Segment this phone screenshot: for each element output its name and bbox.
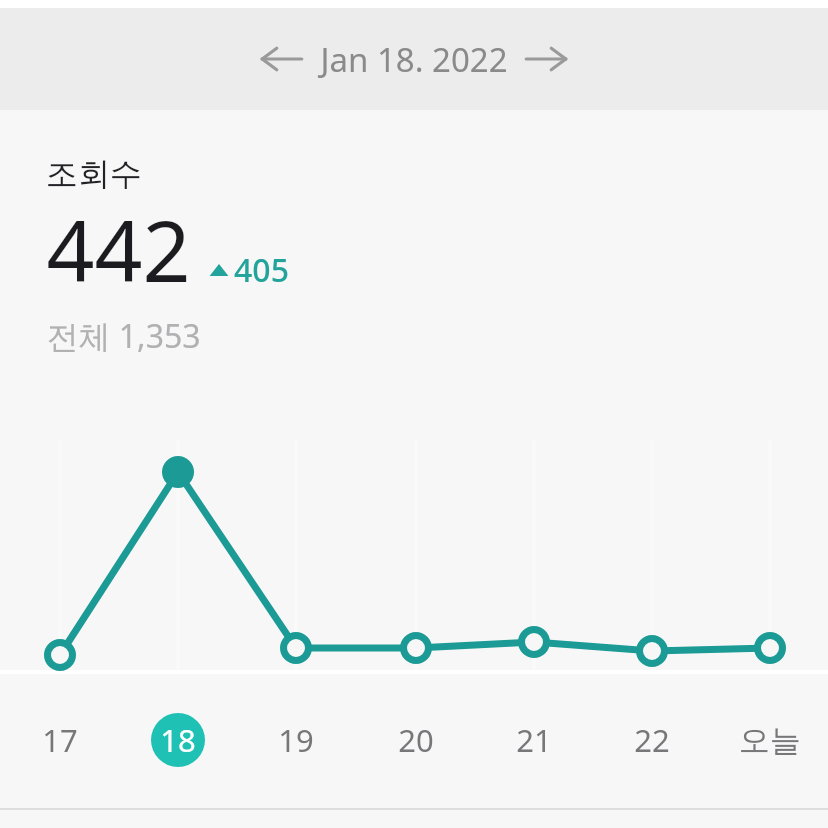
button[interactable]: 20 [376, 700, 456, 780]
button[interactable]: 18 [138, 700, 218, 780]
button[interactable]: 17 [20, 700, 100, 780]
staticText: 17 [42, 719, 78, 761]
button[interactable]: Next day [518, 31, 574, 87]
button[interactable]: Jan 18. 2022 [320, 37, 508, 82]
staticText: Jan 18. 2022 [320, 37, 508, 82]
staticText: 조회수 [46, 154, 142, 194]
staticText: 405 [234, 248, 289, 292]
staticText: 18 [160, 719, 196, 761]
button[interactable]: 19 [256, 700, 336, 780]
button[interactable]: 22 [612, 700, 692, 780]
staticText: 19 [278, 719, 314, 761]
staticText: 21 [516, 719, 552, 761]
staticText: 전체 1,353 [46, 314, 201, 358]
button[interactable]: 오늘 [730, 700, 810, 780]
staticText: 20 [398, 719, 434, 761]
staticText: 442 [46, 192, 191, 306]
button[interactable]: 21 [494, 700, 574, 780]
button[interactable]: Previous day [254, 31, 310, 87]
staticText: 22 [634, 719, 670, 761]
staticText: 오늘 [739, 721, 801, 760]
